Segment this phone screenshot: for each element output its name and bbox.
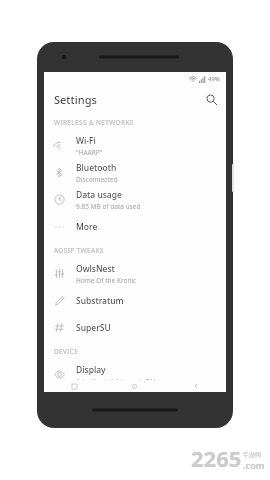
button[interactable]: Bluetooth xyxy=(44,159,226,186)
staticText: Adaptive brightness is ON xyxy=(76,377,156,386)
button[interactable]: Wi-Fi xyxy=(44,132,226,159)
staticText: Bluetooth xyxy=(76,162,117,174)
staticText: 手游网 xyxy=(243,451,261,459)
button[interactable]: Home xyxy=(104,380,165,392)
staticText: SuperSU xyxy=(76,322,111,334)
staticText: Display xyxy=(76,364,106,376)
staticText: WIRELESS & NETWORKS xyxy=(54,118,134,127)
staticText: OwlsNest xyxy=(76,263,115,275)
staticText: DEVICE xyxy=(54,347,79,356)
button[interactable]: Search xyxy=(202,90,220,108)
staticText: Substratum xyxy=(76,295,124,307)
button[interactable]: More xyxy=(44,213,226,240)
button[interactable]: SuperSU xyxy=(44,314,226,341)
staticText: More xyxy=(76,221,98,233)
staticText: 49% xyxy=(208,75,220,83)
button[interactable]: Substratum xyxy=(44,287,226,314)
staticText: 9.85 MB of data used xyxy=(76,202,141,211)
staticText: 2265 xyxy=(191,443,242,473)
button[interactable]: Data usage xyxy=(44,186,226,213)
button[interactable]: OwlsNest xyxy=(44,260,226,287)
staticText: Wi-Fi xyxy=(76,135,96,147)
staticText: .com xyxy=(243,459,265,471)
staticText: Data usage xyxy=(76,189,122,201)
staticText: Home Of the Kronic xyxy=(76,276,137,285)
staticText: Settings xyxy=(54,92,97,107)
staticText: "HAARP" xyxy=(76,148,103,157)
button[interactable]: Recent apps xyxy=(44,380,104,392)
staticText: AOSIP TWEAKS xyxy=(54,246,104,255)
button[interactable]: Back xyxy=(165,380,226,392)
button[interactable]: Display xyxy=(44,361,226,388)
staticText: Disconnected xyxy=(76,175,118,184)
